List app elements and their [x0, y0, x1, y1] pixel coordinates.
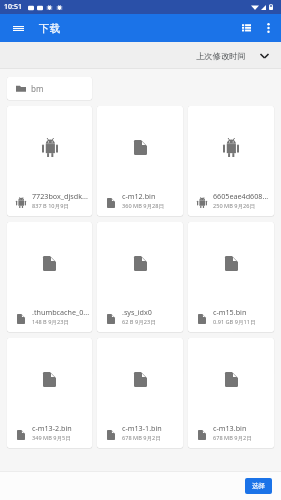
staticText: 349 MB 9月5日	[32, 434, 71, 442]
staticText: c-m13.bin	[213, 423, 247, 433]
staticText: 10:51	[4, 2, 22, 12]
staticText: c-m15.bin	[213, 307, 247, 317]
staticText: c-m13-1.bin	[122, 423, 162, 433]
staticText: 0.91 GB 9月11日	[213, 318, 256, 326]
staticText: 678 MB 9月2日	[122, 434, 161, 442]
button[interactable]: c-m13-2.bin	[7, 338, 92, 448]
button[interactable]: c-m13.bin	[188, 338, 274, 448]
staticText: 选择	[252, 482, 265, 490]
staticText: 62 B 9月23日	[122, 318, 156, 326]
staticText: 250 MB 9月26日	[213, 202, 256, 210]
staticText: c-m12.bin	[122, 191, 156, 201]
staticText: bm	[31, 83, 44, 94]
button[interactable]: 上次修改时间	[192, 48, 273, 64]
staticText: 360 MB 9月28日	[122, 202, 165, 210]
staticText: 7723box_djsdk...	[32, 191, 88, 201]
button[interactable]: Switch view	[235, 17, 257, 39]
button[interactable]: 6605eae4d608...	[188, 106, 274, 216]
staticText: 6605eae4d608...	[213, 191, 269, 201]
staticText: 下载	[39, 22, 60, 35]
staticText: .sys_idx0	[122, 307, 152, 317]
button[interactable]: .thumbcache_0...	[7, 222, 92, 332]
button[interactable]: c-m15.bin	[188, 222, 274, 332]
button[interactable]: 7723box_djsdk...	[7, 106, 92, 216]
button[interactable]: c-m13-1.bin	[97, 338, 183, 448]
staticText: 678 MB 9月2日	[213, 434, 252, 442]
button[interactable]: Open navigation menu	[7, 17, 29, 39]
staticText: 上次修改时间	[196, 51, 246, 61]
button[interactable]: 选择	[245, 478, 272, 494]
staticText: c-m13-2.bin	[32, 423, 72, 433]
button[interactable]: c-m12.bin	[97, 106, 183, 216]
button[interactable]: bm	[7, 77, 92, 100]
button[interactable]: More options	[257, 17, 279, 39]
staticText: 148 B 9月23日	[32, 318, 69, 326]
staticText: 837 B 10月9日	[32, 202, 69, 210]
staticText: .thumbcache_0...	[32, 307, 90, 317]
button[interactable]: .sys_idx0	[97, 222, 183, 332]
